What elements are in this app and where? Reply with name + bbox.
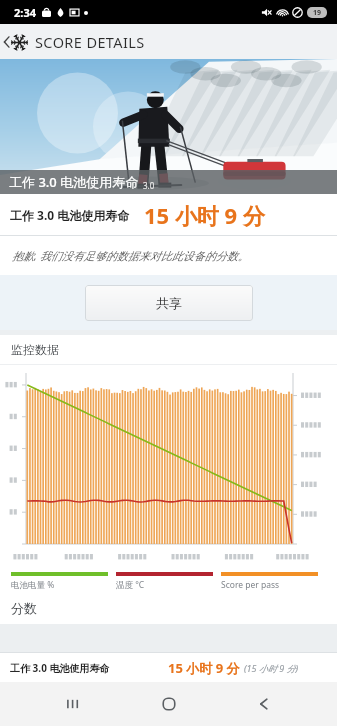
staticText: 15 小时 9 分	[144, 200, 265, 230]
staticText: 温度 °C	[116, 579, 145, 591]
button[interactable]: Back	[241, 682, 287, 726]
button[interactable]: 共享	[85, 285, 253, 321]
staticText: 工作 3.0 电池使用寿命	[10, 207, 130, 223]
staticText: Score per pass	[221, 579, 280, 591]
staticText: 19	[313, 8, 322, 18]
staticText: 抱歉, 我们没有足够的数据来对比此设备的分数。	[12, 248, 249, 263]
staticText: 工作 3.0 电池使用寿命	[9, 173, 139, 191]
staticText: SCORE DETAILS	[35, 32, 145, 52]
staticText: 电池电量 %	[11, 579, 55, 591]
staticText: 2:34	[14, 5, 36, 20]
staticText: 分数	[11, 600, 37, 616]
button[interactable]: Home	[146, 682, 192, 726]
staticText: 15 小时 9 分	[168, 659, 240, 677]
staticText: 工作 3.0 电池使用寿命	[10, 661, 110, 675]
staticText: 共享	[156, 295, 182, 311]
staticText: (15 小时 9 分)	[244, 662, 299, 674]
staticText: 3.0	[143, 180, 155, 191]
button[interactable]: Back	[0, 28, 151, 56]
button[interactable]: Recent apps	[50, 682, 96, 726]
staticText: 监控数据	[11, 342, 59, 357]
